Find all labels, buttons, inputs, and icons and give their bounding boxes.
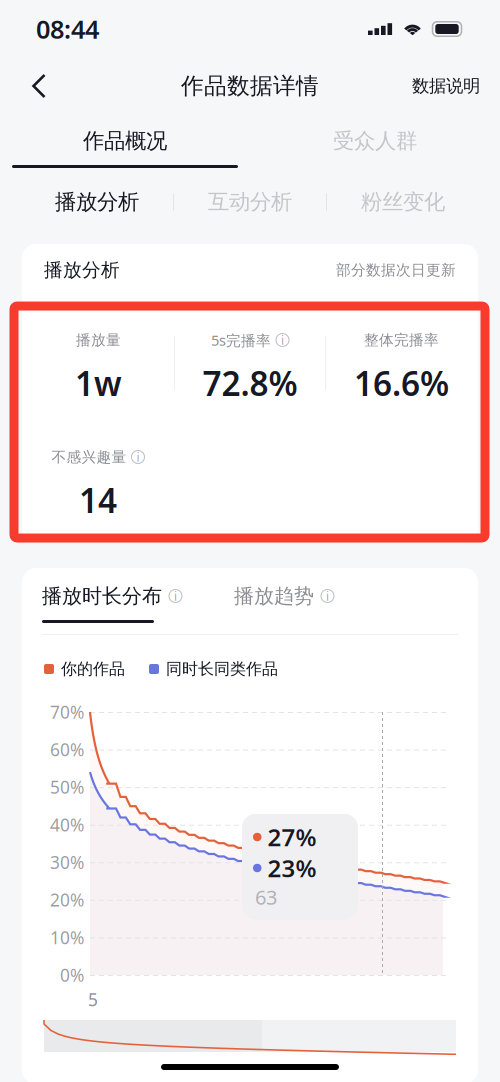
staticText: i: [281, 332, 284, 348]
staticText: 播放分析: [44, 258, 120, 281]
staticText: 粉丝变化: [361, 189, 445, 215]
button[interactable]: 作品概况: [0, 114, 250, 174]
staticText: 部分数据次日更新: [336, 261, 456, 279]
staticText: 受众人群: [333, 128, 417, 154]
button[interactable]: 播放分析: [21, 174, 173, 230]
staticText: 5: [88, 988, 98, 1011]
staticText: 播放时长分布: [42, 584, 162, 608]
button[interactable]: 互动分析: [174, 174, 326, 230]
staticText: 50%: [50, 776, 84, 799]
staticText: 0%: [60, 963, 84, 986]
button[interactable]: 受众人群: [250, 114, 500, 174]
staticText: 互动分析: [208, 189, 292, 215]
button[interactable]: 返回: [12, 59, 66, 113]
staticText: 30%: [50, 851, 84, 874]
staticText: i: [326, 588, 329, 604]
staticText: 63: [255, 884, 277, 910]
staticText: 14: [79, 478, 117, 522]
button[interactable]: 数据说明: [404, 59, 488, 113]
button[interactable]: 粉丝变化: [327, 174, 479, 230]
staticText: 20%: [50, 888, 84, 911]
staticText: 整体完播率: [364, 331, 439, 349]
staticText: 播放分析: [55, 189, 139, 215]
button[interactable]: 播放时长分布: [42, 585, 202, 625]
staticText: 作品数据详情: [181, 72, 319, 100]
staticText: i: [136, 449, 139, 465]
staticText: 27%: [267, 821, 316, 853]
staticText: i: [174, 588, 177, 604]
staticText: 1w: [75, 361, 122, 405]
staticText: 08:44: [36, 12, 99, 46]
button[interactable]: 播放趋势: [234, 585, 354, 625]
staticText: 不感兴趣量: [51, 448, 126, 466]
staticText: 作品概况: [83, 128, 167, 154]
staticText: 10%: [50, 926, 84, 949]
staticText: 你的作品: [61, 659, 125, 679]
staticText: 同时长同类作品: [166, 659, 278, 679]
staticText: 40%: [50, 813, 84, 836]
staticText: 72.8%: [202, 361, 297, 405]
staticText: 70%: [50, 700, 84, 723]
staticText: 23%: [267, 852, 316, 884]
staticText: 播放趋势: [234, 584, 314, 608]
staticText: 60%: [50, 738, 84, 761]
staticText: 播放量: [76, 331, 121, 349]
staticText: 5s完播率: [211, 330, 271, 350]
staticText: 数据说明: [412, 75, 480, 97]
staticText: 16.6%: [354, 361, 449, 405]
